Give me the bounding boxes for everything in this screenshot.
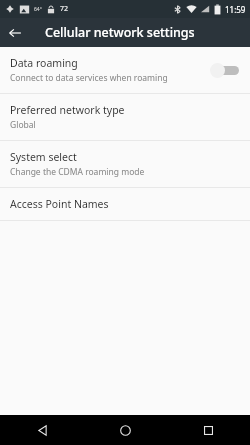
button[interactable]: Back: [0, 18, 30, 47]
button[interactable]: Data roaming toggle: [210, 62, 240, 78]
staticText: 11:59: [225, 4, 246, 15]
staticText: System select: [10, 150, 77, 164]
staticText: Preferred network type: [10, 103, 125, 117]
staticText: Connect to data services when roaming: [10, 72, 168, 84]
button[interactable]: Recents: [167, 415, 250, 445]
button[interactable]: Home: [84, 415, 167, 445]
staticText: Cellular network settings: [45, 24, 195, 41]
button[interactable]: Data roaming: [0, 47, 250, 93]
staticText: Change the CDMA roaming mode: [10, 166, 145, 178]
staticText: 64°: [34, 6, 42, 13]
staticText: Access Point Names: [10, 197, 109, 211]
staticText: Global: [10, 119, 36, 131]
button[interactable]: Access Point Names: [0, 188, 250, 220]
button[interactable]: System select: [0, 141, 250, 187]
button[interactable]: Back: [0, 415, 84, 445]
staticText: Data roaming: [10, 56, 78, 70]
button[interactable]: Preferred network type: [0, 94, 250, 140]
staticText: 72: [60, 4, 69, 14]
